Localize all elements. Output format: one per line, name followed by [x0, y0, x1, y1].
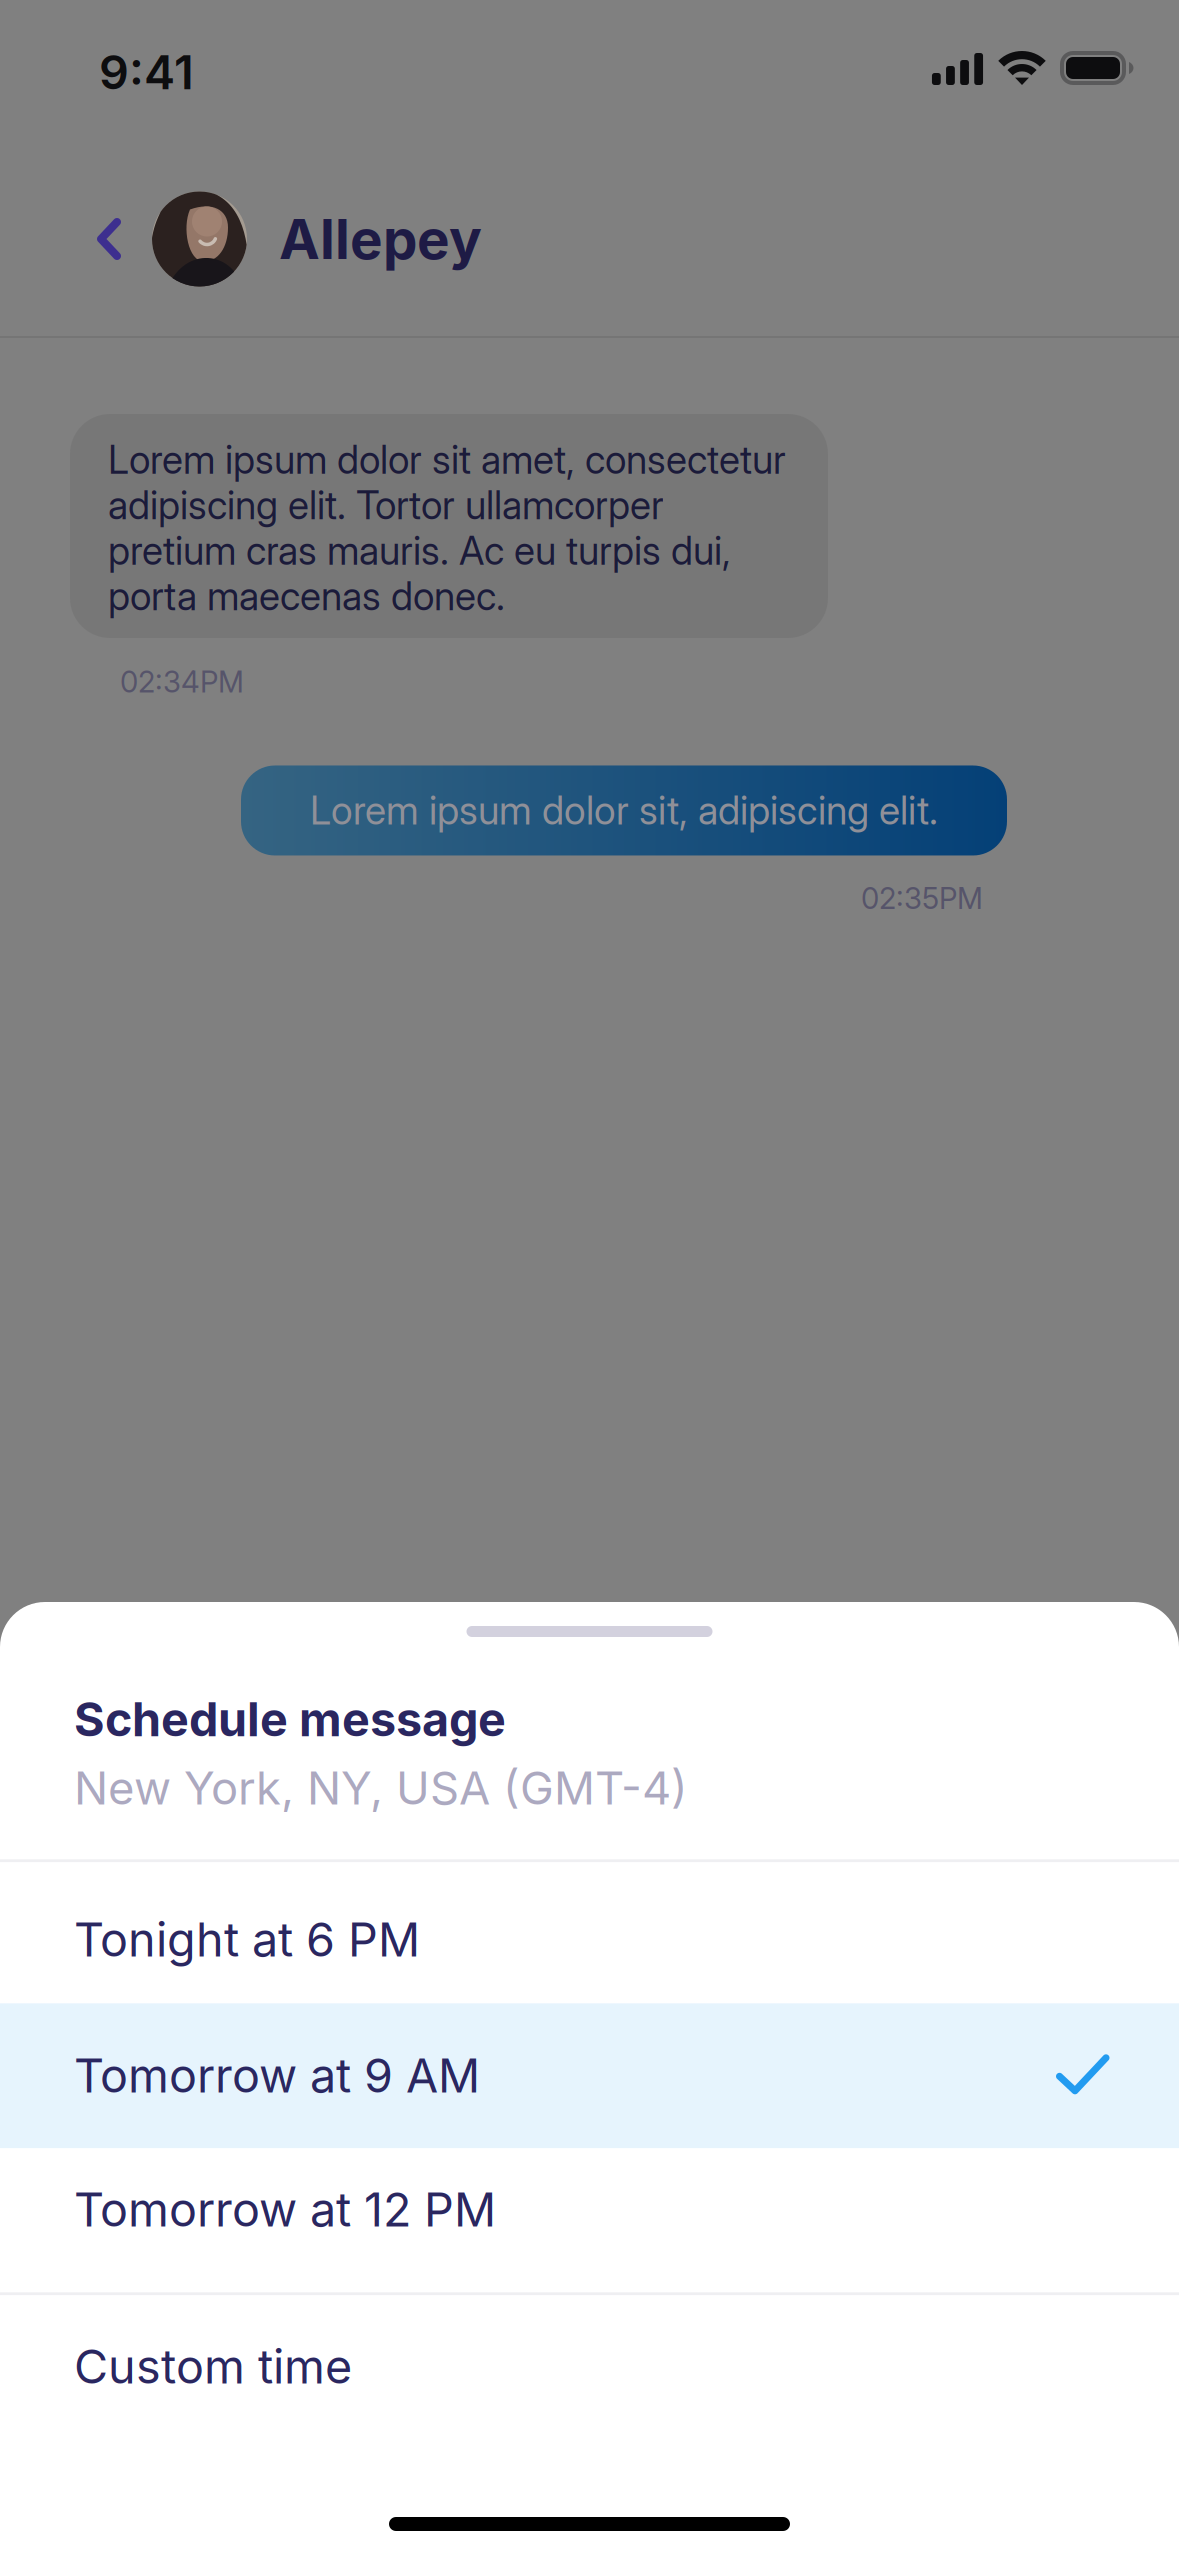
- staticText: 9:41: [99, 44, 194, 100]
- button[interactable]: Tomorrow at 9 AM: [0, 2003, 1179, 2148]
- staticText: Lorem ipsum dolor sit, adipiscing elit.: [310, 787, 938, 834]
- button[interactable]: Custom time: [0, 2295, 1179, 2439]
- button[interactable]: Tomorrow at 12 PM: [0, 2148, 1179, 2292]
- button[interactable]: Tonight at 6 PM: [0, 1862, 1179, 2003]
- staticText: Allepey: [279, 206, 482, 272]
- staticText: Schedule message: [74, 1691, 506, 1747]
- staticText: Lorem ipsum dolor sit amet, consectetur …: [108, 437, 786, 619]
- button[interactable]: Back: [66, 189, 152, 289]
- staticText: Tonight at 6 PM: [74, 1911, 420, 1968]
- staticText: Tomorrow at 12 PM: [74, 2181, 496, 2238]
- button[interactable]: Allepey: [152, 191, 482, 286]
- staticText: 02:34PM: [120, 664, 244, 699]
- staticText: New York, NY, USA (GMT-4): [74, 1760, 688, 1815]
- staticText: Custom time: [74, 2338, 352, 2395]
- staticText: 02:35PM: [861, 880, 983, 916]
- staticText: Tomorrow at 9 AM: [74, 2047, 480, 2104]
